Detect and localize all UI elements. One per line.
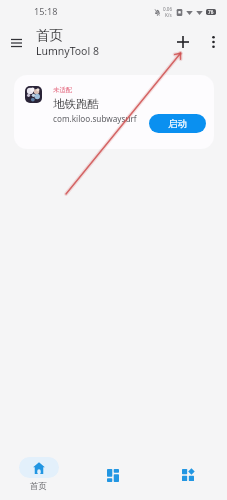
button[interactable]: More options: [200, 29, 226, 55]
button[interactable]: Tools: [88, 452, 138, 500]
staticText: 地铁跑酷: [53, 97, 99, 111]
staticText: 0.06: [163, 6, 173, 12]
button[interactable]: Menu: [4, 30, 29, 55]
button[interactable]: 首页: [12, 452, 66, 500]
staticText: 15:18: [34, 5, 58, 18]
button[interactable]: 启动: [149, 114, 206, 133]
button[interactable]: Apps: [163, 452, 213, 500]
staticText: 76: [208, 9, 214, 15]
staticText: com.kiloo.subwaysurf: [53, 113, 137, 124]
staticText: K/s: [165, 12, 172, 18]
staticText: LumnyTool 8: [36, 44, 99, 58]
staticText: 启动: [168, 118, 187, 130]
staticText: 首页: [30, 481, 48, 492]
staticText: 首页: [36, 27, 63, 44]
button[interactable]: 未适配: [14, 75, 214, 149]
button[interactable]: Add: [170, 29, 196, 55]
staticText: 未适配: [53, 86, 73, 94]
